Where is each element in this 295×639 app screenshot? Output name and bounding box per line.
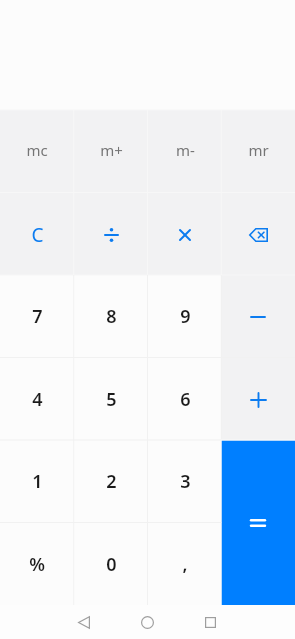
staticText: , <box>182 552 188 577</box>
button[interactable]: Plus <box>221 358 295 441</box>
button[interactable]: 3 <box>148 440 222 523</box>
staticText: 7 <box>32 304 43 329</box>
staticText: 8 <box>106 304 117 329</box>
button[interactable]: Home <box>123 605 171 639</box>
button[interactable]: Multiply <box>148 193 222 276</box>
button[interactable]: mr <box>221 110 295 193</box>
button[interactable]: % <box>0 523 74 606</box>
button[interactable]: Minus <box>221 275 295 358</box>
button[interactable]: 5 <box>74 358 148 441</box>
button[interactable]: 6 <box>148 358 222 441</box>
staticText: m- <box>176 140 195 160</box>
button[interactable]: 1 <box>0 440 74 523</box>
button[interactable]: Backspace <box>221 193 295 276</box>
staticText: 0 <box>106 552 117 577</box>
button[interactable]: , <box>148 523 222 606</box>
button[interactable]: 8 <box>74 275 148 358</box>
button[interactable]: 7 <box>0 275 74 358</box>
button[interactable]: 4 <box>0 358 74 441</box>
staticText: C <box>31 222 44 248</box>
staticText: mr <box>248 140 269 160</box>
button[interactable]: 2 <box>74 440 148 523</box>
button[interactable]: C <box>0 193 74 276</box>
button[interactable]: Recent apps <box>186 605 234 639</box>
staticText: mc <box>26 140 48 160</box>
staticText: 5 <box>106 387 117 412</box>
button[interactable]: Back <box>60 605 108 639</box>
staticText: 9 <box>180 304 191 329</box>
button[interactable]: m- <box>148 110 222 193</box>
staticText: 3 <box>180 469 191 494</box>
button[interactable]: mc <box>0 110 74 193</box>
button[interactable]: 0 <box>74 523 148 606</box>
staticText: 2 <box>106 469 117 494</box>
staticText: m+ <box>100 140 123 160</box>
staticText: 4 <box>32 387 43 412</box>
staticText: 1 <box>32 469 43 494</box>
button[interactable]: m+ <box>74 110 148 193</box>
staticText: 6 <box>180 387 191 412</box>
button[interactable]: Equals <box>221 440 295 605</box>
button[interactable]: 9 <box>148 275 222 358</box>
staticText: % <box>29 552 45 577</box>
button[interactable]: Divide <box>74 193 148 276</box>
